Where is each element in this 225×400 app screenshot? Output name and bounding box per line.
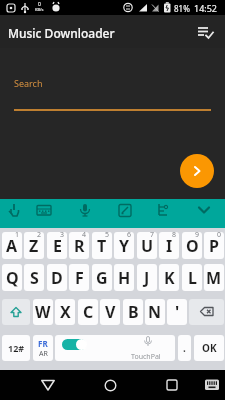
button[interactable]: B [123, 299, 143, 325]
staticText: E [53, 235, 62, 257]
staticText: 9 [195, 230, 200, 240]
staticText: M [206, 267, 222, 289]
button[interactable]: Q [2, 264, 22, 291]
staticText: Z [29, 235, 39, 257]
staticText: Y [119, 235, 130, 257]
button[interactable]: C [78, 299, 98, 325]
button[interactable]: E [47, 232, 67, 259]
button[interactable] [189, 299, 224, 325]
staticText: 12# [8, 342, 25, 354]
staticText: 81% [174, 3, 190, 14]
staticText: H [118, 267, 131, 289]
button[interactable]: . [178, 335, 191, 361]
staticText: D [51, 267, 63, 289]
staticText: . [183, 341, 186, 355]
button[interactable]: H [114, 264, 134, 291]
button[interactable] [55, 335, 175, 361]
button[interactable]: L [182, 264, 202, 291]
button[interactable]: ' [167, 299, 187, 325]
staticText: V [105, 301, 116, 323]
button[interactable] [2, 299, 30, 325]
button[interactable]: G [92, 264, 112, 291]
staticText: ' [175, 301, 180, 323]
button[interactable] [73, 199, 97, 221]
button[interactable] [2, 199, 26, 221]
button[interactable]: J [137, 264, 157, 291]
staticText: Music Downloader [8, 25, 115, 41]
button[interactable]: A [2, 232, 22, 259]
staticText: 2 [37, 230, 42, 240]
button[interactable] [180, 154, 214, 188]
button[interactable]: O [182, 232, 202, 259]
staticText: A [6, 235, 18, 257]
staticText: 1 [15, 230, 20, 240]
button[interactable] [32, 199, 56, 221]
button[interactable] [62, 339, 86, 350]
button[interactable] [192, 19, 218, 45]
button[interactable]: U [137, 232, 157, 259]
button[interactable] [192, 199, 216, 221]
staticText: 0 [38, 1, 41, 8]
button[interactable]: D [47, 264, 67, 291]
staticText: L [188, 267, 197, 289]
staticText: 4 [82, 230, 87, 240]
button[interactable]: X [55, 299, 75, 325]
staticText: X [60, 301, 71, 323]
staticText: W [35, 301, 51, 323]
button[interactable]: FR [33, 335, 53, 361]
button[interactable]: OK [194, 335, 224, 361]
button[interactable] [36, 373, 60, 397]
staticText: N [148, 301, 162, 323]
staticText: 0 [217, 230, 222, 240]
staticText: G [96, 267, 108, 289]
button[interactable]: N [145, 299, 165, 325]
staticText: R [74, 235, 85, 257]
button[interactable]: M [204, 264, 224, 291]
staticText: AR [39, 349, 48, 359]
button[interactable]: S [24, 264, 44, 291]
button[interactable]: R [69, 232, 89, 259]
staticText: T [97, 235, 107, 257]
staticText: S [30, 267, 39, 289]
button[interactable]: F [69, 264, 89, 291]
staticText: C [83, 301, 94, 323]
button[interactable] [201, 375, 223, 395]
button[interactable] [160, 373, 184, 397]
button[interactable]: T [92, 232, 112, 259]
staticText: Search [14, 77, 43, 89]
staticText: I [166, 235, 173, 257]
staticText: 7 [150, 230, 155, 240]
staticText: P [209, 235, 219, 257]
button[interactable] [98, 373, 122, 397]
button[interactable]: V [100, 299, 120, 325]
staticText: O [186, 235, 199, 257]
button[interactable]: K [159, 264, 179, 291]
staticText: 8 [172, 230, 177, 240]
button[interactable]: Y [114, 232, 134, 259]
button[interactable]: P [204, 232, 224, 259]
button[interactable] [113, 199, 137, 221]
button[interactable]: W [33, 299, 53, 325]
button[interactable]: 12# [2, 335, 30, 361]
staticText: F [75, 267, 84, 289]
button[interactable] [151, 199, 175, 221]
staticText: OK [202, 341, 217, 355]
staticText: 6 [127, 230, 132, 240]
staticText: U [141, 235, 154, 257]
button[interactable]: Z [24, 232, 44, 259]
staticText: FR [38, 338, 48, 349]
staticText: 5 [105, 230, 110, 240]
staticText: Q [6, 267, 19, 289]
staticText: KB/s [35, 7, 44, 12]
staticText: 3 [60, 230, 65, 240]
button[interactable]: I [159, 232, 179, 259]
staticText: 14:52 [194, 2, 218, 14]
staticText: B [128, 301, 139, 323]
staticText: TouchPal [131, 352, 161, 362]
staticText: J [144, 267, 150, 289]
staticText: K [164, 267, 175, 289]
